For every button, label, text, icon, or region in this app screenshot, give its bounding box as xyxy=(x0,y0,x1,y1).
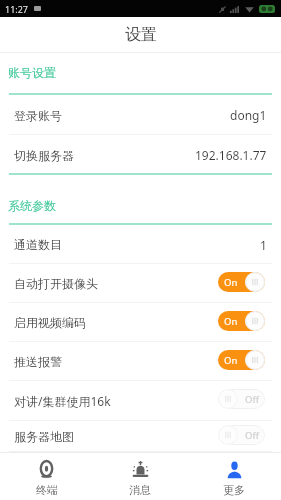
staticText: Off xyxy=(245,429,259,442)
staticText: 通道数目 xyxy=(14,237,62,252)
staticText: dong1 xyxy=(230,107,267,123)
staticText: 登录账号 xyxy=(14,108,62,123)
button[interactable]: 消息 xyxy=(93,453,187,500)
button[interactable]: Toggle on xyxy=(218,272,265,292)
staticText: 系统参数 xyxy=(8,198,56,213)
button[interactable]: Toggle off xyxy=(218,389,265,409)
staticText: 更多 xyxy=(223,483,245,497)
staticText: On xyxy=(224,354,238,367)
button[interactable]: 登录账号 xyxy=(0,95,281,135)
staticText: 192.168.1.77 xyxy=(195,147,267,163)
staticText: 设置 xyxy=(125,25,157,45)
button[interactable]: 启用视频编码 xyxy=(0,303,281,342)
button[interactable]: Toggle on xyxy=(218,311,265,331)
button[interactable]: 自动打开摄像头 xyxy=(0,264,281,303)
button[interactable]: 对讲/集群使用16k xyxy=(0,381,281,421)
staticText: 启用视频编码 xyxy=(14,315,86,330)
staticText: 消息 xyxy=(129,483,151,497)
staticText: 账号设置 xyxy=(8,65,56,80)
button[interactable]: 推送报警 xyxy=(0,342,281,381)
staticText: 服务器地图 xyxy=(14,429,74,444)
staticText: 终端 xyxy=(36,483,58,497)
staticText: 自动打开摄像头 xyxy=(14,276,98,291)
staticText: On xyxy=(224,276,238,289)
staticText: 切换服务器 xyxy=(14,148,74,163)
button[interactable]: 服务器地图 xyxy=(0,421,281,452)
staticText: 对讲/集群使用16k xyxy=(14,393,111,409)
button[interactable]: Toggle on xyxy=(218,350,265,370)
staticText: 1 xyxy=(260,237,267,253)
button[interactable]: Toggle off xyxy=(218,425,265,445)
button[interactable]: 更多 xyxy=(187,453,281,500)
staticText: On xyxy=(224,315,238,328)
staticText: 推送报警 xyxy=(14,354,62,369)
staticText: Off xyxy=(245,393,259,406)
button[interactable]: 通道数目 xyxy=(0,225,281,264)
button[interactable]: 切换服务器 xyxy=(0,135,281,175)
button[interactable]: 终端 xyxy=(0,453,93,500)
staticText: 11:27 xyxy=(5,3,29,15)
